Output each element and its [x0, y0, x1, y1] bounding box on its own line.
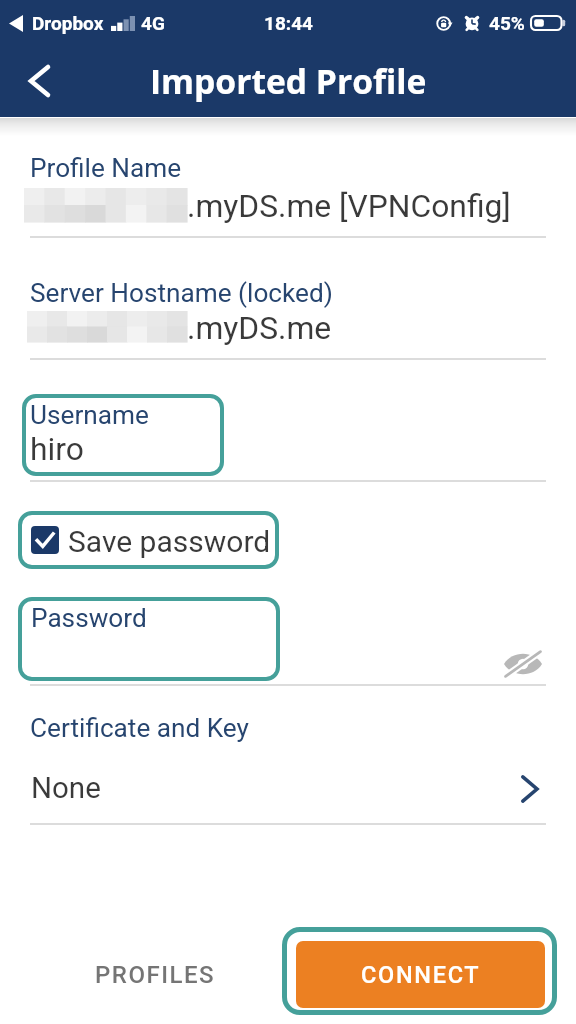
staticText: None: [31, 771, 101, 806]
staticText: Profile Name: [30, 153, 182, 184]
staticText: Save password: [68, 524, 271, 559]
staticText: .myDS.me: [187, 309, 332, 346]
staticText: Server Hostname (locked): [30, 278, 333, 309]
staticText: Dropbox: [32, 12, 104, 34]
button[interactable]: CONNECT: [282, 927, 557, 1015]
staticText: 45%: [489, 12, 525, 34]
staticText: Imported Profile: [150, 58, 427, 104]
button[interactable]: Show password: [497, 642, 549, 686]
staticText: Password: [31, 603, 147, 634]
button[interactable]: Save password: [18, 511, 279, 569]
button[interactable]: None: [0, 762, 576, 823]
button[interactable]: PROFILES: [60, 947, 250, 1003]
staticText: CONNECT: [361, 961, 481, 989]
staticText: Certificate and Key: [30, 713, 249, 744]
button[interactable]: Password: [18, 597, 280, 681]
button[interactable]: Username: [22, 394, 224, 476]
button[interactable]: Back: [12, 54, 66, 108]
staticText: 4G: [141, 12, 165, 34]
staticText: PROFILES: [95, 961, 216, 989]
staticText: hiro: [30, 430, 84, 467]
staticText: Username: [30, 400, 149, 431]
staticText: .myDS.me [VPNConfig]: [187, 187, 511, 224]
staticText: 18:44: [264, 12, 313, 34]
